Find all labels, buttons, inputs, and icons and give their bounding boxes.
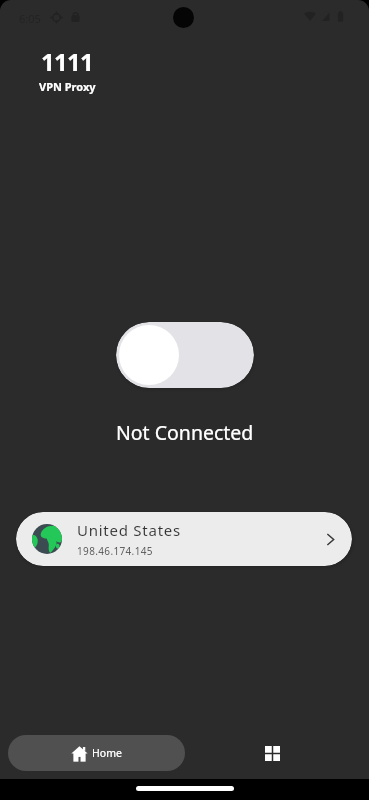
staticText: 198.46.174.145 (77, 544, 153, 558)
staticText: 1111 (41, 45, 94, 78)
staticText: Home (92, 746, 122, 760)
button[interactable]: Connect toggle (116, 322, 254, 388)
button[interactable]: United States (16, 512, 352, 566)
staticText: Not Connected (116, 419, 254, 446)
staticText: United States (77, 520, 181, 540)
staticText: VPN Proxy (39, 79, 96, 94)
button[interactable]: Apps (257, 738, 287, 768)
button[interactable]: Home (8, 735, 185, 771)
